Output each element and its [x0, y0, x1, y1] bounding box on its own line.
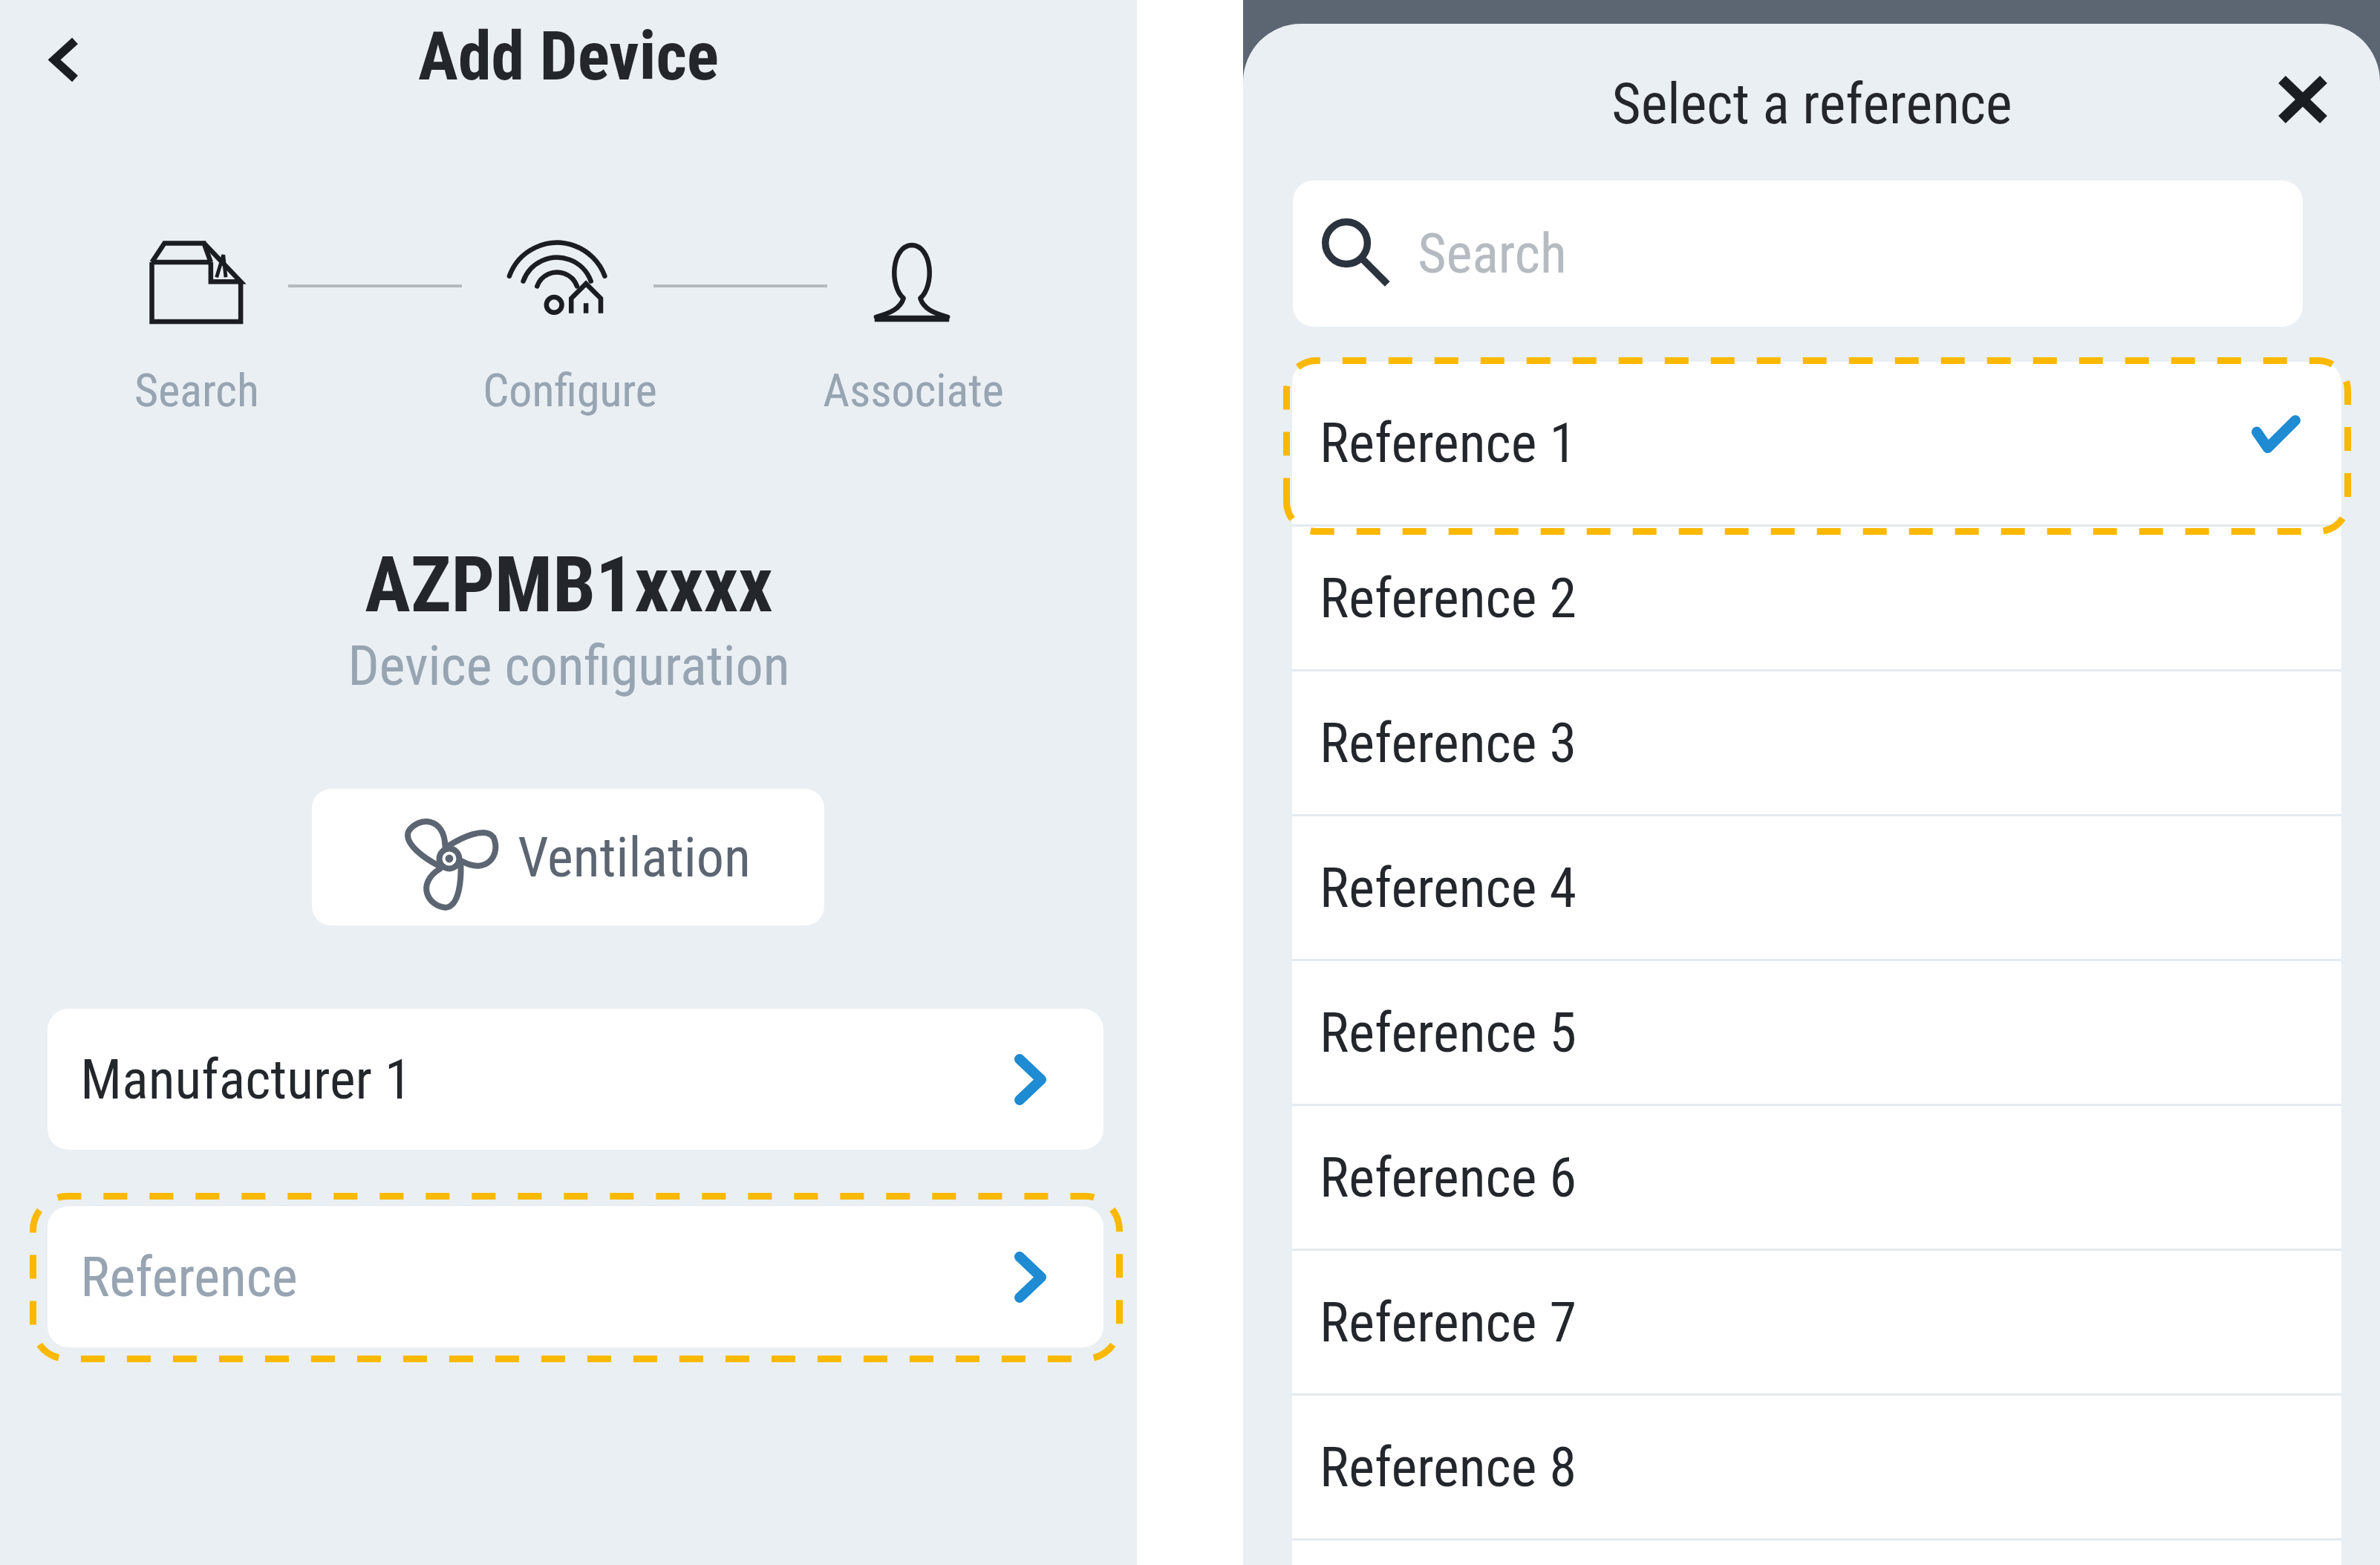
- staticText: Reference 7: [1320, 1290, 1577, 1355]
- button[interactable]: Reference: [48, 1206, 1103, 1347]
- staticText: Associate: [823, 363, 1004, 417]
- button[interactable]: Reference 3: [1292, 671, 2341, 814]
- button[interactable]: Reference 1: [1292, 362, 2341, 524]
- button[interactable]: Close: [2251, 51, 2355, 148]
- button[interactable]: Reference 8: [1292, 1396, 2341, 1538]
- staticText: AZPMB1xxxx: [365, 540, 773, 630]
- staticText: Configure: [483, 363, 657, 417]
- button[interactable]: Ventilation: [312, 789, 824, 925]
- staticText: Search: [134, 363, 259, 417]
- button[interactable]: Reference 7: [1292, 1251, 2341, 1393]
- button[interactable]: Search: [1293, 180, 2303, 327]
- staticText: Reference 6: [1320, 1145, 1577, 1210]
- button[interactable]: Reference 6: [1292, 1106, 2341, 1249]
- staticText: Reference 5: [1320, 1001, 1577, 1065]
- button[interactable]: Reference 5: [1292, 961, 2341, 1104]
- button[interactable]: Manufacturer 1: [48, 1009, 1103, 1150]
- staticText: Reference 3: [1320, 711, 1577, 775]
- button[interactable]: Back: [13, 12, 117, 108]
- staticText: Reference 4: [1320, 856, 1577, 920]
- button[interactable]: Reference 4: [1292, 816, 2341, 959]
- staticText: Manufacturer 1: [80, 1047, 412, 1112]
- staticText: Device configuration: [348, 634, 790, 698]
- staticText: Reference 1: [1320, 411, 1577, 475]
- staticText: Select a reference: [1611, 71, 2012, 137]
- staticText: Search: [1418, 221, 1567, 286]
- staticText: Add Device: [418, 18, 719, 96]
- staticText: Ventilation: [518, 825, 751, 890]
- staticText: Reference 8: [1320, 1435, 1577, 1500]
- staticText: Reference 2: [1320, 566, 1577, 631]
- button[interactable]: Reference 2: [1292, 527, 2341, 669]
- button[interactable]: Reference 9: [1292, 1540, 2341, 1565]
- staticText: Reference: [80, 1245, 298, 1309]
